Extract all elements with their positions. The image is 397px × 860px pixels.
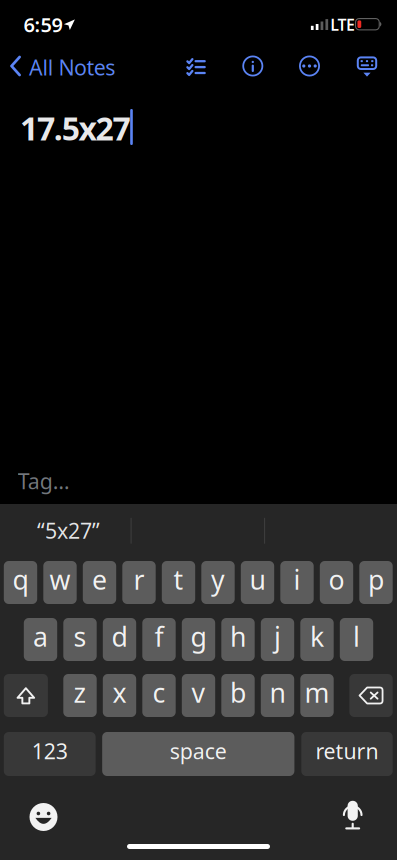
staticText: “5x27” bbox=[37, 516, 100, 545]
staticText: r bbox=[133, 562, 144, 597]
staticText: b bbox=[230, 675, 246, 710]
staticText: All Notes bbox=[29, 53, 115, 81]
button[interactable]: p bbox=[359, 561, 393, 604]
staticText: p bbox=[368, 562, 384, 597]
button[interactable]: Dictate bbox=[331, 795, 375, 839]
staticText: t bbox=[173, 562, 183, 597]
button[interactable]: u bbox=[241, 561, 274, 604]
button[interactable]: Shift bbox=[4, 674, 48, 717]
button[interactable]: space bbox=[102, 732, 294, 776]
staticText: a bbox=[33, 619, 48, 654]
button[interactable]: i bbox=[280, 561, 314, 604]
button[interactable]: t bbox=[162, 561, 195, 604]
button[interactable]: Checklist bbox=[175, 44, 217, 88]
staticText: n bbox=[269, 675, 285, 710]
staticText: g bbox=[190, 619, 206, 654]
button[interactable]: r bbox=[122, 561, 156, 604]
button[interactable]: k bbox=[300, 618, 334, 661]
button[interactable]: v bbox=[182, 674, 215, 717]
button[interactable]: Hide Keyboard bbox=[346, 44, 388, 88]
button[interactable]: n bbox=[261, 674, 294, 717]
button[interactable]: d bbox=[103, 618, 136, 661]
button[interactable]: j bbox=[261, 618, 294, 661]
button[interactable]: z bbox=[63, 674, 97, 717]
staticText: w bbox=[49, 562, 70, 597]
button[interactable]: q bbox=[4, 561, 37, 604]
button[interactable]: b bbox=[221, 674, 255, 717]
button[interactable]: o bbox=[320, 561, 353, 604]
staticText: c bbox=[152, 675, 165, 710]
button[interactable]: m bbox=[300, 674, 334, 717]
staticText: 123 bbox=[32, 737, 68, 765]
staticText: x bbox=[112, 675, 126, 710]
button[interactable]: Info bbox=[232, 44, 274, 88]
staticText: f bbox=[154, 619, 163, 654]
button[interactable]: e bbox=[83, 561, 116, 604]
button[interactable]: x bbox=[103, 674, 136, 717]
button[interactable]: Delete bbox=[349, 674, 393, 717]
button[interactable]: “5x27” bbox=[3, 506, 134, 554]
staticText: u bbox=[249, 562, 265, 597]
staticText: j bbox=[274, 619, 281, 654]
staticText: d bbox=[111, 619, 127, 654]
staticText: e bbox=[92, 562, 107, 597]
staticText: 6:59 bbox=[23, 11, 62, 38]
button[interactable]: Emoji bbox=[21, 795, 65, 839]
staticText: o bbox=[328, 562, 344, 597]
staticText: z bbox=[73, 675, 86, 710]
button[interactable]: More bbox=[288, 44, 330, 88]
staticText: y bbox=[211, 562, 225, 597]
staticText: 17.5x27 bbox=[20, 107, 130, 149]
button[interactable]: f bbox=[142, 618, 176, 661]
staticText: return bbox=[315, 737, 378, 765]
button[interactable]: g bbox=[182, 618, 215, 661]
staticText: l bbox=[353, 619, 360, 654]
staticText: k bbox=[310, 619, 324, 654]
staticText: m bbox=[304, 675, 329, 710]
staticText: LTE bbox=[330, 14, 355, 35]
staticText: v bbox=[191, 675, 205, 710]
button[interactable]: return bbox=[301, 732, 393, 776]
button[interactable]: s bbox=[63, 618, 97, 661]
button[interactable]: a bbox=[24, 618, 57, 661]
button[interactable]: 123 bbox=[4, 732, 96, 776]
staticText: h bbox=[230, 619, 246, 654]
button[interactable]: c bbox=[142, 674, 176, 717]
button[interactable]: y bbox=[201, 561, 235, 604]
staticText: Tag… bbox=[18, 467, 70, 495]
button[interactable]: h bbox=[221, 618, 255, 661]
button[interactable]: All Notes bbox=[0, 44, 112, 88]
staticText: s bbox=[73, 619, 86, 654]
staticText: space bbox=[170, 737, 227, 765]
staticText: q bbox=[12, 562, 28, 597]
button[interactable]: l bbox=[340, 618, 373, 661]
staticText: i bbox=[293, 562, 300, 597]
button[interactable]: w bbox=[43, 561, 77, 604]
